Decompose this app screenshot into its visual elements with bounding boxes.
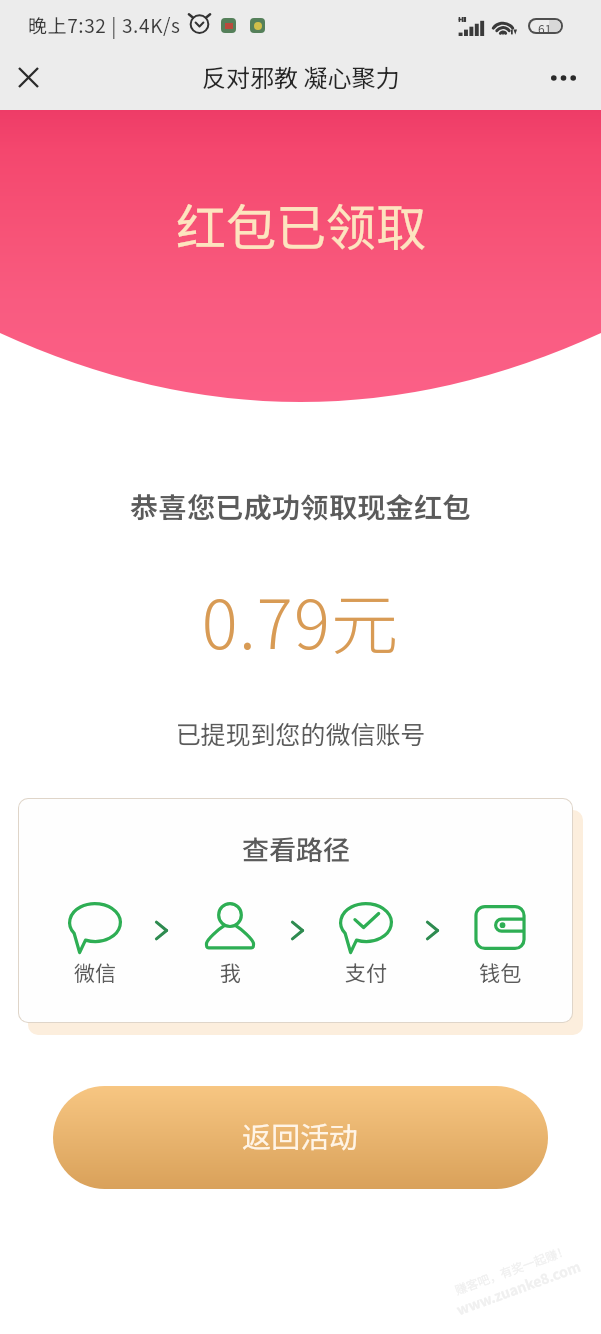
- button[interactable]: 钱包: [460, 902, 540, 987]
- staticText: 我: [220, 957, 241, 987]
- staticText: 晚上7:32 | 3.4K/s: [28, 11, 181, 39]
- staticText: 反对邪教 凝心聚力: [202, 59, 400, 94]
- staticText: www.zuanke8.com: [454, 1256, 583, 1319]
- staticText: 红包已领取: [176, 188, 426, 260]
- staticText: 0.79元: [0, 571, 601, 668]
- staticText: 恭喜您已成功领取现金红包: [0, 486, 601, 527]
- button[interactable]: 查看路径: [19, 799, 572, 1022]
- staticText: 微信: [74, 957, 116, 987]
- button[interactable]: More options: [535, 50, 591, 106]
- button[interactable]: 微信: [55, 902, 135, 987]
- button[interactable]: 我: [190, 902, 270, 987]
- staticText: 返回活动: [242, 1114, 359, 1156]
- button[interactable]: Close: [0, 49, 56, 105]
- staticText: 61: [538, 20, 552, 32]
- button[interactable]: 返回活动: [53, 1086, 548, 1189]
- staticText: 已提现到您的微信账号: [0, 715, 601, 751]
- staticText: 赚客吧，有奖一起赚！: [452, 1240, 572, 1298]
- staticText: 支付: [345, 957, 387, 987]
- button[interactable]: 支付: [326, 902, 406, 987]
- staticText: 钱包: [479, 957, 521, 987]
- staticText: 查看路径: [242, 829, 350, 868]
